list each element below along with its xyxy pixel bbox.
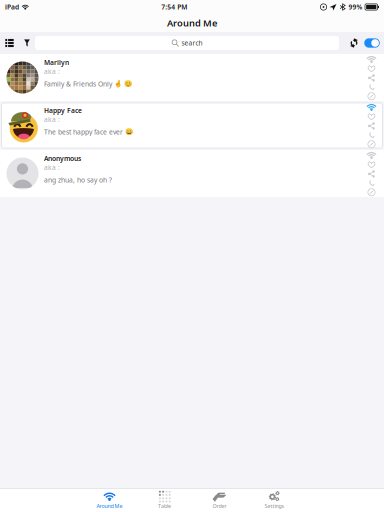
button[interactable]: Table: [137, 489, 192, 512]
button[interactable]: Happy Face: [0, 102, 384, 149]
button[interactable]: Toggle live updates: [362, 34, 382, 52]
button[interactable]: Order: [192, 489, 247, 512]
staticText: aka :: [44, 163, 60, 172]
staticText: Around Me: [96, 502, 122, 509]
staticText: Marilyn: [44, 58, 69, 67]
staticText: 7:54 PM: [161, 3, 187, 11]
button[interactable]: Filter: [19, 33, 35, 53]
staticText: search: [181, 39, 202, 47]
button[interactable]: Refresh: [346, 34, 362, 52]
staticText: aka :: [44, 115, 60, 124]
staticText: Order: [212, 502, 226, 509]
button[interactable]: Marilyn: [0, 54, 384, 101]
staticText: Settings: [264, 502, 284, 509]
staticText: The best happy face ever 😄: [44, 127, 133, 136]
button[interactable]: Anonymous: [0, 150, 384, 197]
staticText: Family & Friends Only 🤞 😊: [44, 79, 132, 88]
button[interactable]: search: [35, 36, 339, 50]
button[interactable]: List view: [0, 33, 19, 53]
staticText: Anonymous: [44, 154, 81, 163]
staticText: iPad: [5, 3, 19, 11]
button[interactable]: Settings: [247, 489, 302, 512]
staticText: ang zhua, ho say oh ?: [44, 175, 112, 184]
staticText: Table: [158, 502, 171, 509]
staticText: Happy Face: [44, 106, 82, 115]
button[interactable]: Around Me: [82, 489, 137, 512]
staticText: aka :: [44, 67, 60, 76]
staticText: 99%: [348, 3, 362, 11]
staticText: Around Me: [167, 17, 217, 29]
